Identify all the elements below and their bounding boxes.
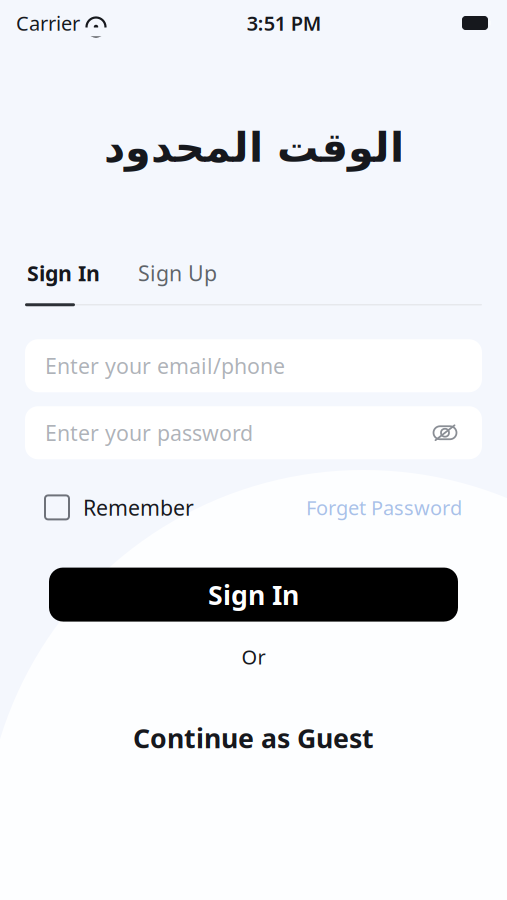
staticText: Sign Up bbox=[138, 259, 217, 287]
staticText: Carrier bbox=[16, 10, 80, 36]
button[interactable]: Continue as Guest bbox=[115, 712, 392, 763]
staticText: Sign In bbox=[27, 259, 100, 287]
staticText: Enter your password bbox=[45, 419, 253, 447]
button[interactable]: Sign In bbox=[49, 568, 458, 622]
staticText: الوقت المحدود bbox=[103, 124, 403, 171]
button[interactable]: Remember bbox=[45, 487, 194, 527]
button[interactable]: Show password bbox=[428, 416, 462, 450]
staticText: Sign In bbox=[208, 577, 299, 612]
staticText: Continue as Guest bbox=[133, 720, 374, 755]
staticText: Forget Password bbox=[306, 494, 462, 521]
staticText: Or bbox=[241, 644, 265, 670]
button[interactable]: Forget Password bbox=[306, 488, 462, 527]
staticText: Enter your email/phone bbox=[45, 352, 285, 380]
button[interactable]: Sign In bbox=[25, 253, 102, 293]
button[interactable]: Sign Up bbox=[136, 253, 219, 293]
staticText: Remember bbox=[83, 493, 194, 521]
staticText: 3:51 PM bbox=[247, 10, 322, 36]
